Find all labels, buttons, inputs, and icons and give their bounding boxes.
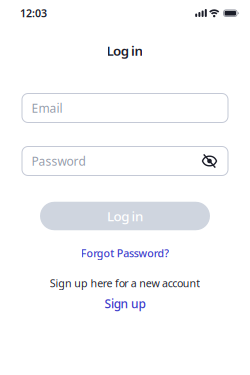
staticText: Sign up here for a new account bbox=[50, 276, 200, 290]
staticText: Forgot Password? bbox=[81, 246, 169, 260]
staticText: 12:03 bbox=[20, 6, 47, 20]
staticText: Password bbox=[31, 153, 85, 169]
button[interactable]: Show password bbox=[201, 153, 217, 169]
staticText: Email bbox=[31, 100, 62, 116]
button[interactable]: Log in bbox=[40, 202, 210, 230]
button[interactable]: Sign up bbox=[104, 295, 146, 311]
staticText: Log in bbox=[106, 42, 143, 59]
staticText: Sign up bbox=[104, 295, 146, 311]
staticText: Log in bbox=[107, 207, 143, 225]
button[interactable]: Forgot Password? bbox=[81, 246, 169, 260]
